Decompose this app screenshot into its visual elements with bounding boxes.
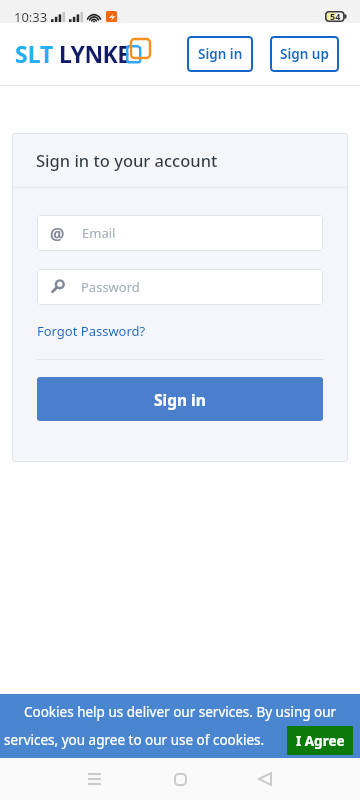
staticText: SLT <box>15 38 54 69</box>
button[interactable]: Forgot Password? <box>37 322 146 340</box>
button[interactable]: Password <box>37 269 323 305</box>
button[interactable]: Sign in <box>37 377 323 421</box>
staticText: Sign in to your account <box>36 149 218 171</box>
staticText: 10:33 <box>14 8 48 26</box>
staticText: Sign up <box>280 45 329 63</box>
button[interactable]: Back <box>243 758 287 800</box>
staticText: Email <box>82 224 116 242</box>
button[interactable]: Home <box>158 758 202 800</box>
staticText: Cookies help us deliver our services. By… <box>24 703 337 721</box>
button[interactable]: Sign in <box>187 36 253 72</box>
button[interactable]: I Agree <box>287 726 353 755</box>
staticText: @ <box>50 223 65 243</box>
button[interactable]: Sign up <box>270 36 339 72</box>
staticText: LYNKE <box>59 38 130 69</box>
staticText: Sign in <box>154 389 206 410</box>
staticText: 54 <box>330 10 341 22</box>
staticText: Sign in <box>198 45 243 63</box>
button[interactable]: @ <box>37 215 323 251</box>
staticText: Password <box>81 278 140 296</box>
staticText: I Agree <box>296 732 345 750</box>
button[interactable]: Recent apps <box>72 758 116 800</box>
staticText: services, you agree to our use of cookie… <box>4 731 265 749</box>
